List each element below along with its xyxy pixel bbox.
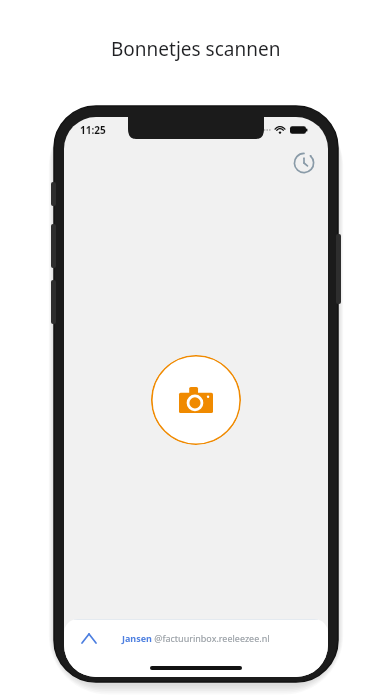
button[interactable]: Jansen @factuurinbox.reeleezee.nl [64,619,328,677]
staticText: Bonnetjes scannen [111,36,281,62]
button[interactable]: Bonnetje scannen [151,355,241,445]
staticText: 11:25 [80,123,106,137]
staticText: Jansen @factuurinbox.reeleezee.nl [122,632,270,644]
button[interactable]: Geschiedenis [288,147,320,179]
